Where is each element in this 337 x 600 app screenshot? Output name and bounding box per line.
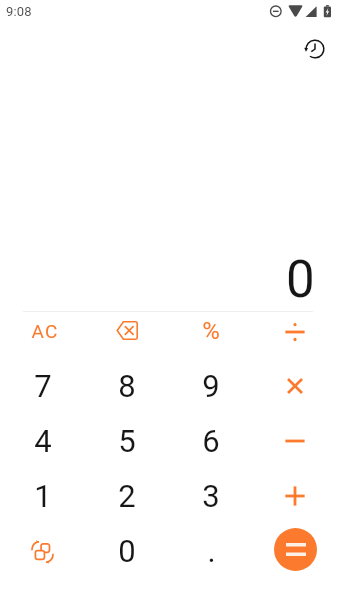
button[interactable]: Unit converter <box>0 524 85 579</box>
button[interactable]: Equals <box>274 528 317 571</box>
button[interactable]: Divide <box>253 304 337 359</box>
staticText: 8 <box>118 368 136 404</box>
button[interactable]: 9 <box>169 359 253 414</box>
staticText: 6 <box>202 423 220 459</box>
staticText: 9 <box>202 368 220 404</box>
button[interactable]: 4 <box>0 414 85 469</box>
button[interactable]: Multiply <box>253 359 337 414</box>
staticText: 0 <box>118 533 136 569</box>
staticText: 1 <box>34 478 52 514</box>
button[interactable]: . <box>169 524 253 579</box>
staticText: 3 <box>202 478 220 514</box>
staticText: % <box>202 317 220 345</box>
button[interactable]: Plus <box>253 469 337 524</box>
staticText: 7 <box>34 368 52 404</box>
staticText: AC <box>31 320 59 342</box>
staticText: 0 <box>286 250 315 310</box>
button[interactable]: History <box>295 29 335 69</box>
button[interactable]: % <box>169 304 253 359</box>
staticText: . <box>207 533 216 569</box>
button[interactable]: Minus <box>253 414 337 469</box>
staticText: 9:08 <box>6 4 32 19</box>
button[interactable]: 3 <box>169 469 253 524</box>
button[interactable]: 8 <box>85 359 169 414</box>
staticText: 5 <box>118 423 136 459</box>
button[interactable]: 0 <box>85 524 169 579</box>
button[interactable]: 5 <box>85 414 169 469</box>
button[interactable]: 7 <box>0 359 85 414</box>
button[interactable]: Backspace <box>85 304 169 359</box>
button[interactable]: 1 <box>0 469 85 524</box>
button[interactable]: AC <box>0 304 85 359</box>
button[interactable]: 6 <box>169 414 253 469</box>
staticText: 4 <box>34 423 52 459</box>
staticText: 2 <box>118 478 136 514</box>
button[interactable]: 2 <box>85 469 169 524</box>
